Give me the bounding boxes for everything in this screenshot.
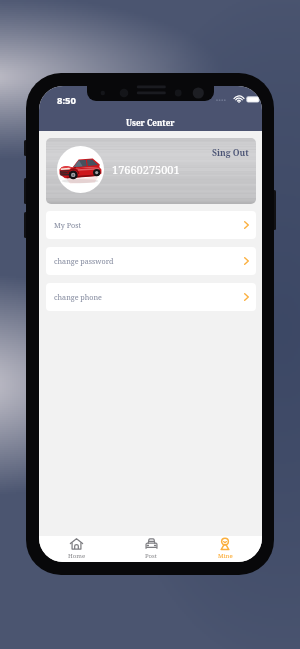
staticText: Mine [218,552,233,560]
staticText: 8:50 [57,94,76,107]
button[interactable]: Sing Out [212,147,249,159]
staticText: Post [145,552,157,560]
button[interactable]: Post [114,536,188,562]
button[interactable]: My Post [46,211,256,239]
button[interactable]: change password [46,247,256,275]
button[interactable]: Home [39,536,114,562]
staticText: My Post [54,220,81,230]
staticText: change password [54,256,114,266]
staticText: Home [68,552,86,560]
button[interactable]: change phone [46,283,256,311]
button[interactable]: Profile photo [57,146,104,193]
button[interactable]: Mine [188,536,262,562]
staticText: User Center [126,117,175,128]
staticText: 17660275001 [112,162,180,177]
staticText: change phone [54,292,102,302]
